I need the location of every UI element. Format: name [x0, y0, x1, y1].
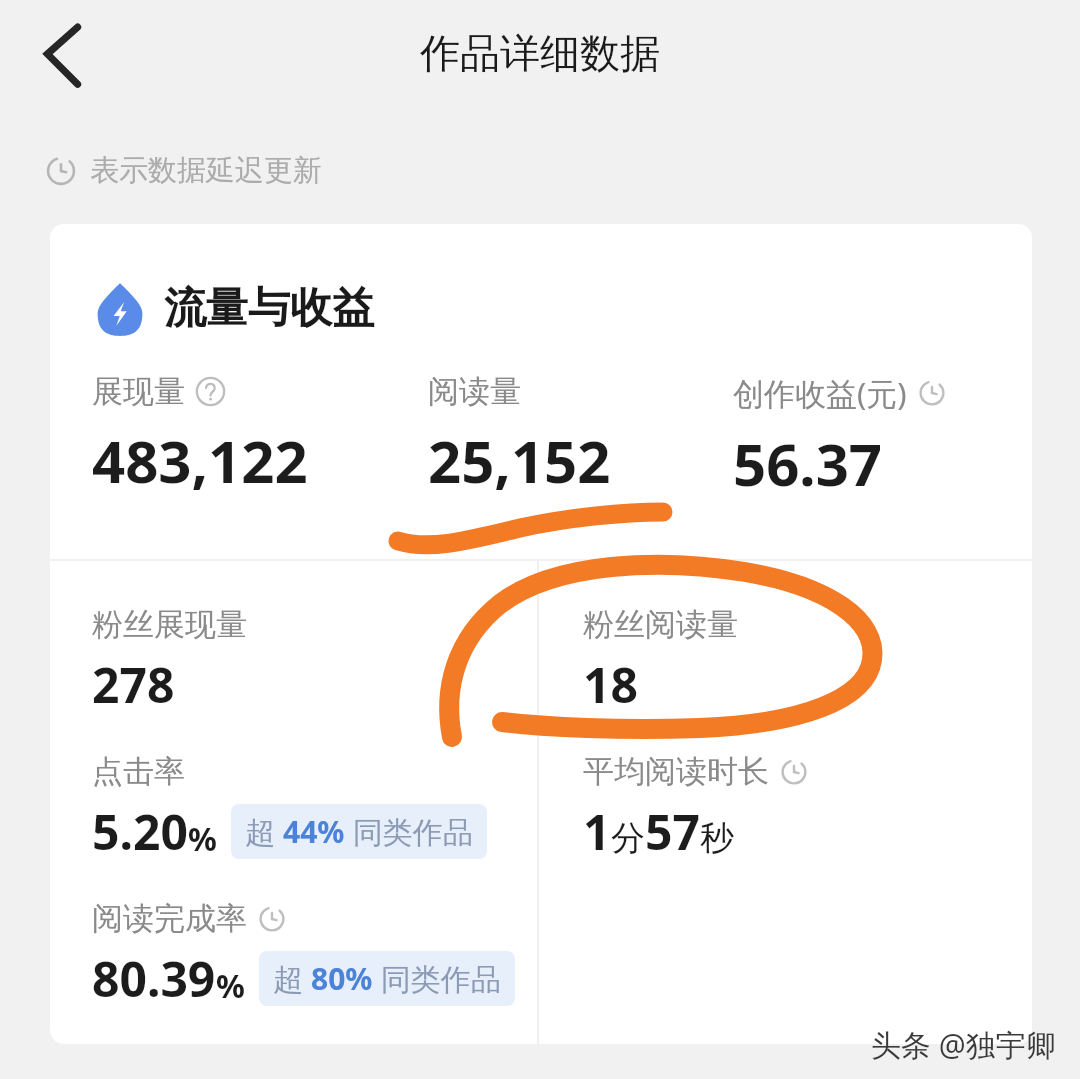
button[interactable]: Back — [18, 12, 102, 96]
button[interactable]: 展现量说明 — [195, 376, 226, 407]
staticText: 秒 — [700, 817, 734, 860]
staticText: 阅读完成率 — [92, 899, 247, 938]
staticText: 278 — [92, 652, 175, 717]
staticText: 作品详细数据 — [0, 28, 1080, 78]
staticText: 80% — [311, 958, 373, 999]
staticText: 平均阅读时长 — [583, 752, 769, 791]
staticText: 创作收益(元) — [733, 372, 907, 414]
staticText: 点击率 — [92, 752, 185, 791]
staticText: 阅读量 — [428, 372, 521, 411]
button[interactable]: 超 — [231, 804, 487, 859]
staticText: 同类作品 — [373, 958, 501, 999]
staticText: 流量与收益 — [164, 282, 374, 335]
staticText: 头条 @独宇卿 — [871, 1024, 1056, 1065]
staticText: 25,152 — [428, 421, 611, 500]
staticText: 同类作品 — [345, 811, 473, 852]
staticText: 80.39 — [92, 946, 216, 1011]
staticText: 18 — [583, 652, 638, 717]
staticText: % — [216, 964, 245, 1008]
button[interactable]: 超 — [259, 951, 515, 1006]
staticText: 57 — [645, 799, 700, 864]
staticText: 1 — [583, 799, 611, 864]
staticText: 44% — [283, 811, 345, 852]
staticText: 表示数据延迟更新 — [90, 152, 322, 189]
staticText: 483,122 — [92, 421, 308, 500]
staticText: 超 — [273, 958, 311, 999]
staticText: 分 — [611, 817, 645, 860]
staticText: % — [188, 817, 217, 861]
staticText: 展现量 — [92, 372, 185, 411]
staticText: 粉丝展现量 — [92, 605, 247, 644]
staticText: 粉丝阅读量 — [583, 605, 738, 644]
staticText: 56.37 — [733, 424, 883, 503]
staticText: 5.20 — [92, 799, 188, 864]
staticText: 超 — [245, 811, 283, 852]
